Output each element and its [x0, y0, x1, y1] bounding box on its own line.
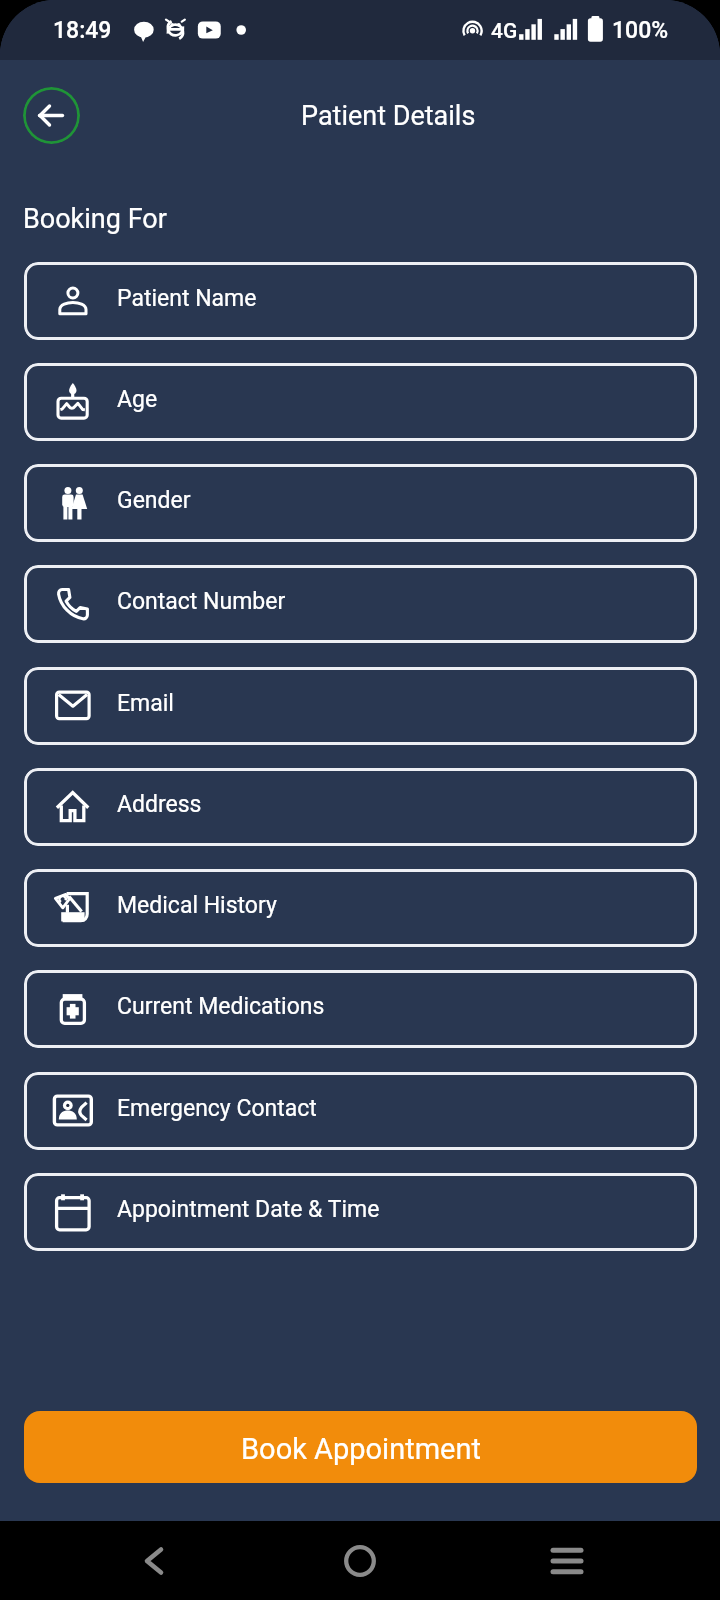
- button[interactable]: Age: [24, 363, 697, 441]
- button[interactable]: Gender: [24, 464, 697, 542]
- staticText: 100%: [612, 17, 669, 44]
- button[interactable]: Medical History: [24, 869, 697, 947]
- staticText: Emergency Contact: [117, 1095, 317, 1122]
- button[interactable]: Appointment Date & Time: [24, 1173, 697, 1251]
- staticText: Address: [117, 791, 202, 818]
- staticText: Appointment Date & Time: [117, 1196, 380, 1223]
- staticText: Medical History: [117, 892, 277, 919]
- staticText: Patient Details: [301, 100, 476, 132]
- button[interactable]: Book Appointment: [24, 1411, 697, 1483]
- staticText: Patient Name: [117, 285, 257, 312]
- button[interactable]: Patient Name: [24, 262, 697, 340]
- staticText: Contact Number: [117, 588, 286, 615]
- button[interactable]: Emergency Contact: [24, 1072, 697, 1150]
- button[interactable]: Back: [23, 87, 80, 144]
- staticText: Booking For: [23, 203, 167, 235]
- button[interactable]: Recent apps: [521, 1521, 613, 1600]
- staticText: Email: [117, 690, 174, 717]
- button[interactable]: Current Medications: [24, 970, 697, 1048]
- staticText: Book Appointment: [241, 1432, 481, 1466]
- staticText: Age: [117, 386, 158, 413]
- button[interactable]: Contact Number: [24, 565, 697, 643]
- button[interactable]: Address: [24, 768, 697, 846]
- staticText: 4G: [491, 19, 518, 44]
- button[interactable]: Back: [108, 1521, 200, 1600]
- staticText: Current Medications: [117, 993, 325, 1020]
- staticText: Gender: [117, 487, 191, 514]
- button[interactable]: Email: [24, 667, 697, 745]
- button[interactable]: Home: [314, 1521, 406, 1600]
- staticText: 18:49: [53, 17, 112, 44]
